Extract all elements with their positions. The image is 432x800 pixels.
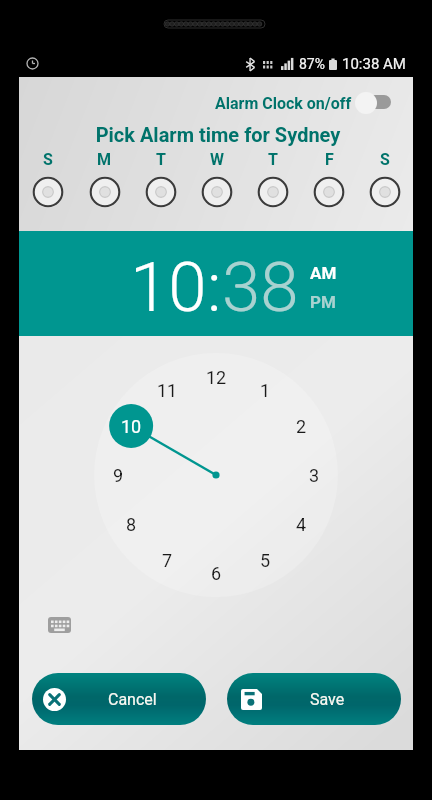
button[interactable]: 3: [292, 453, 336, 497]
button[interactable]: AM: [310, 263, 337, 283]
button[interactable]: T: [133, 150, 189, 209]
button[interactable]: Save: [227, 673, 401, 725]
staticText: T: [268, 150, 278, 169]
button[interactable]: F: [301, 150, 357, 209]
staticText: 8: [126, 514, 137, 535]
staticText: Cancel: [108, 690, 157, 709]
staticText: M: [97, 150, 112, 169]
staticText: 1: [260, 380, 271, 401]
button[interactable]: 6: [194, 551, 238, 595]
staticText: T: [156, 150, 166, 169]
button[interactable]: 9: [96, 453, 140, 497]
button[interactable]: Cancel: [32, 673, 206, 725]
button[interactable]: 10: [130, 247, 207, 328]
button[interactable]: 38: [222, 247, 299, 328]
button[interactable]: 5: [243, 538, 287, 582]
staticText: S: [380, 150, 390, 169]
staticText: 6: [211, 563, 222, 584]
button[interactable]: 4: [279, 502, 323, 546]
button[interactable]: 12: [194, 355, 238, 399]
button[interactable]: 2: [279, 404, 323, 448]
staticText: 5: [260, 550, 271, 571]
staticText: Save: [310, 690, 345, 709]
button[interactable]: T: [245, 150, 301, 209]
button[interactable]: Alarm Clock on/off: [215, 90, 393, 116]
staticText: Alarm Clock on/off: [215, 94, 352, 113]
staticText: 12: [206, 367, 227, 388]
button[interactable]: 7: [145, 538, 189, 582]
staticText: 9: [113, 465, 124, 486]
button[interactable]: W: [189, 150, 245, 209]
staticText: 10: [121, 416, 142, 437]
button[interactable]: S: [19, 150, 76, 209]
staticText: 87%: [299, 56, 325, 72]
staticText: 3: [309, 465, 320, 486]
staticText: 2: [296, 416, 307, 437]
staticText: 11: [157, 380, 178, 401]
button[interactable]: 11: [145, 368, 189, 412]
staticText: F: [325, 150, 334, 169]
button[interactable]: 8: [109, 502, 153, 546]
staticText: 10:38 AM: [342, 55, 406, 73]
button[interactable]: M: [76, 150, 133, 209]
button[interactable]: S: [357, 150, 413, 209]
button[interactable]: Switch to keyboard input: [41, 607, 77, 643]
staticText: 4: [296, 514, 307, 535]
button[interactable]: 1: [243, 368, 287, 412]
staticText: W: [210, 150, 224, 169]
button[interactable]: PM: [310, 292, 336, 312]
staticText: 7: [162, 550, 173, 571]
staticText: :: [207, 247, 222, 328]
staticText: Pick Alarm time for Sydney: [21, 123, 415, 146]
staticText: S: [43, 150, 53, 169]
button[interactable]: 10: [109, 404, 153, 448]
